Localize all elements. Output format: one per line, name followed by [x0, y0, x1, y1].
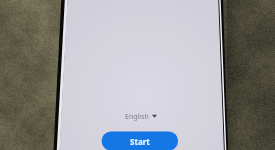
staticText: Start	[130, 136, 150, 147]
button[interactable]: Start	[102, 132, 178, 150]
button[interactable]: English	[125, 110, 157, 121]
staticText: English	[125, 112, 149, 122]
